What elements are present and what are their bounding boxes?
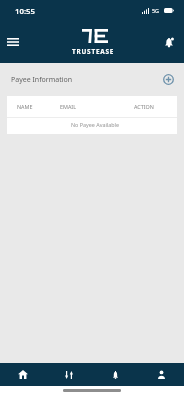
button[interactable]: Home — [0, 363, 46, 386]
button[interactable]: Profile — [138, 363, 184, 386]
staticText: EMAIL — [60, 103, 76, 110]
staticText: Payee Information — [11, 75, 73, 85]
staticText: ACTION — [134, 103, 154, 110]
staticText: TRUSTEASE — [72, 47, 115, 56]
button[interactable]: Add payee — [161, 72, 176, 87]
staticText: No Payee Available — [71, 121, 120, 128]
button[interactable]: Menu — [1, 30, 25, 54]
staticText: 5G — [152, 7, 160, 14]
button[interactable]: Transfers — [46, 363, 92, 386]
button[interactable]: Notifications — [159, 32, 179, 52]
staticText: NAME — [17, 103, 33, 110]
staticText: 10:55 — [15, 6, 35, 17]
button[interactable]: Notifications — [92, 363, 138, 386]
